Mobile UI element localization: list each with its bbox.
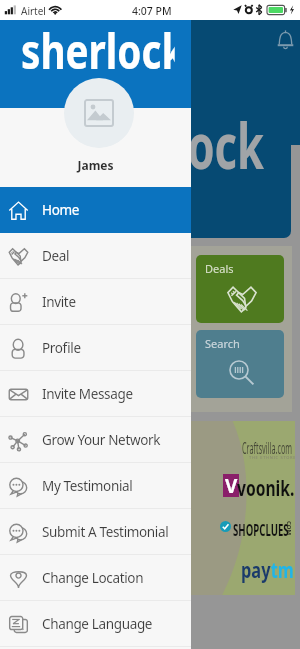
staticText: tm — [271, 556, 294, 585]
staticText: 4:07 PM — [132, 4, 172, 18]
button[interactable]: Profile — [0, 325, 191, 371]
staticText: Grow Your Network — [42, 431, 161, 449]
button[interactable]: Deals — [196, 255, 284, 323]
staticText: Change Location — [42, 569, 144, 587]
button[interactable]: Search — [196, 330, 284, 398]
button[interactable]: Notifications — [272, 26, 298, 52]
button[interactable]: Deal — [0, 233, 191, 279]
staticText: pay — [241, 556, 271, 585]
staticText: Submit A Testimonial — [42, 523, 169, 541]
staticText: THE ETHNIC STORE — [249, 455, 295, 460]
button[interactable]: Invite — [0, 279, 191, 325]
button[interactable]: Change Language — [0, 601, 191, 647]
button[interactable]: Profile photo — [64, 78, 134, 148]
button[interactable]: Change Location — [0, 555, 191, 601]
staticText: sherlock — [21, 18, 175, 83]
staticText: Search — [205, 336, 240, 351]
staticText: Home — [42, 201, 80, 219]
staticText: sherlock — [79, 102, 265, 188]
staticText: COM — [285, 521, 293, 536]
staticText: SHOPCLUES — [233, 519, 289, 540]
staticText: Deals — [205, 261, 234, 276]
button[interactable]: Invite Message — [0, 371, 191, 417]
button[interactable]: My Testimonial — [0, 463, 191, 509]
button[interactable]: Submit A Testimonial — [0, 509, 191, 555]
staticText: Invite Message — [42, 385, 133, 403]
button[interactable]: Grow Your Network — [0, 417, 191, 463]
staticText: voonik. — [237, 472, 294, 502]
staticText: James — [0, 157, 191, 173]
staticText: My Testimonial — [42, 477, 133, 495]
staticText: Craftsvilla.com — [242, 437, 292, 459]
staticText: Profile — [42, 339, 81, 357]
staticText: Invite — [42, 293, 76, 311]
staticText: Change Language — [42, 615, 153, 633]
staticText: Deal — [42, 247, 70, 265]
button[interactable]: Home — [0, 187, 191, 233]
staticText: V — [225, 473, 238, 496]
staticText: Airtel — [21, 4, 46, 18]
